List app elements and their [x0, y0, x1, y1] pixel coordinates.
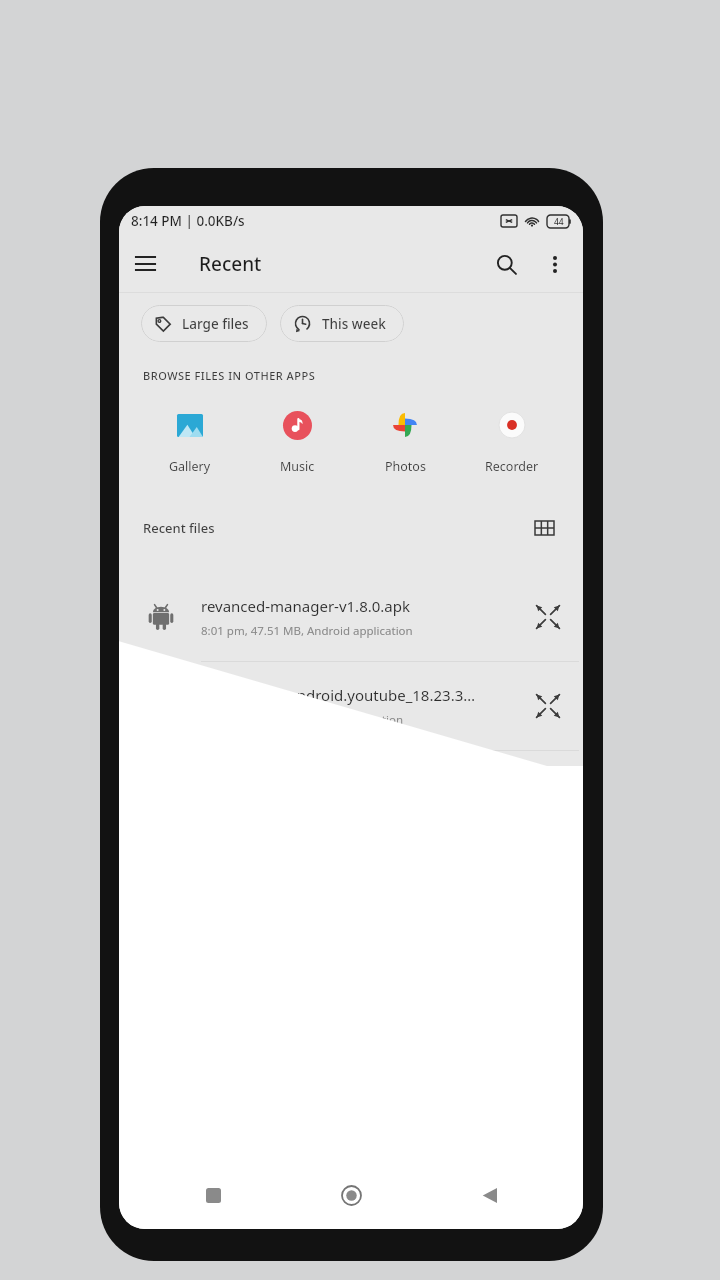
button[interactable]: Home	[328, 1172, 374, 1218]
staticText: 8:01 pm, 47.51 MB, Android application	[201, 623, 413, 639]
staticText: BROWSE FILES IN OTHER APPS	[143, 368, 316, 383]
staticText: Photos	[385, 458, 426, 475]
button[interactable]: More options	[531, 240, 579, 288]
staticText: Recent	[199, 251, 262, 277]
staticText: com.google.android.youtube_18.23.3…	[201, 685, 476, 705]
staticText: Recent files	[143, 519, 215, 537]
button[interactable]: Recent apps	[190, 1172, 236, 1218]
staticText: 8:14 PM | 0.0KB/s	[131, 212, 245, 230]
staticText: Music	[280, 458, 315, 475]
button[interactable]: Music	[252, 405, 342, 479]
staticText: 44	[554, 216, 564, 228]
button[interactable]: com.google.android.youtube_18.23.3…	[119, 662, 583, 750]
staticText: This week	[322, 315, 386, 333]
button[interactable]: Photos	[360, 405, 450, 479]
button[interactable]: Back	[466, 1172, 512, 1218]
button[interactable]: Expand	[527, 596, 569, 638]
button[interactable]: Search	[481, 239, 531, 289]
button[interactable]: Expand	[527, 685, 569, 727]
button[interactable]: Large files	[141, 305, 267, 342]
button[interactable]: Switch to grid view	[525, 509, 563, 547]
button[interactable]: Recorder	[467, 405, 557, 479]
button[interactable]: This week	[280, 305, 404, 342]
staticText: 7:26 pm, 135 MB, Android application	[201, 712, 404, 728]
button[interactable]: Gallery	[145, 405, 235, 479]
staticText: Recorder	[485, 458, 539, 475]
button[interactable]: revanced-manager-v1.8.0.apk	[119, 573, 583, 661]
staticText: Gallery	[169, 458, 211, 475]
staticText: Large files	[182, 315, 249, 333]
staticText: revanced-manager-v1.8.0.apk	[201, 596, 410, 616]
button[interactable]: Open navigation menu	[119, 238, 171, 290]
